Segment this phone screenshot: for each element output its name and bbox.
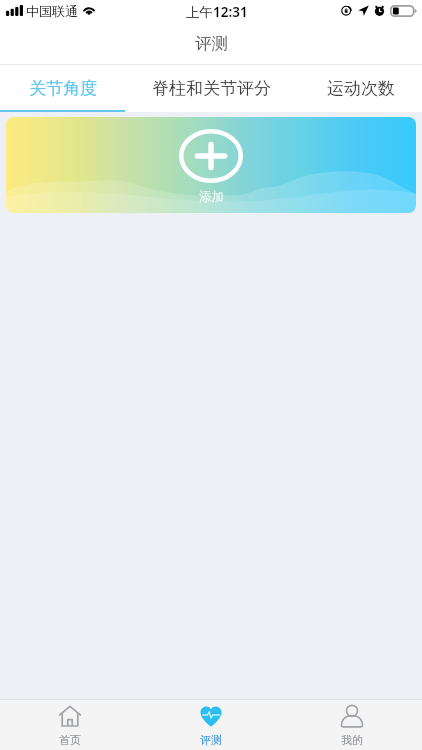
other: Location: [358, 5, 369, 16]
other: Rotation lock: [341, 5, 352, 16]
staticText: 中国联通: [26, 3, 78, 19]
button[interactable]: 添加: [6, 117, 416, 213]
staticText: 评测: [200, 733, 222, 747]
staticText: 我的: [341, 733, 363, 747]
button[interactable]: 关节角度: [0, 65, 137, 112]
other: Battery: [390, 5, 417, 17]
staticText: 脊柱和关节评分: [152, 78, 271, 99]
button[interactable]: 我的: [281, 700, 422, 750]
staticText: 首页: [59, 733, 81, 747]
button[interactable]: 首页: [0, 700, 140, 750]
other: Alarm: [374, 5, 385, 16]
staticText: 上午12:31: [186, 3, 248, 21]
button[interactable]: 评测: [140, 700, 281, 750]
staticText: 评测: [195, 33, 228, 54]
button[interactable]: 脊柱和关节评分: [137, 65, 286, 112]
button[interactable]: 运动次数: [286, 65, 422, 112]
staticText: 添加: [199, 189, 224, 205]
staticText: 运动次数: [327, 78, 395, 99]
staticText: 关节角度: [29, 78, 97, 99]
